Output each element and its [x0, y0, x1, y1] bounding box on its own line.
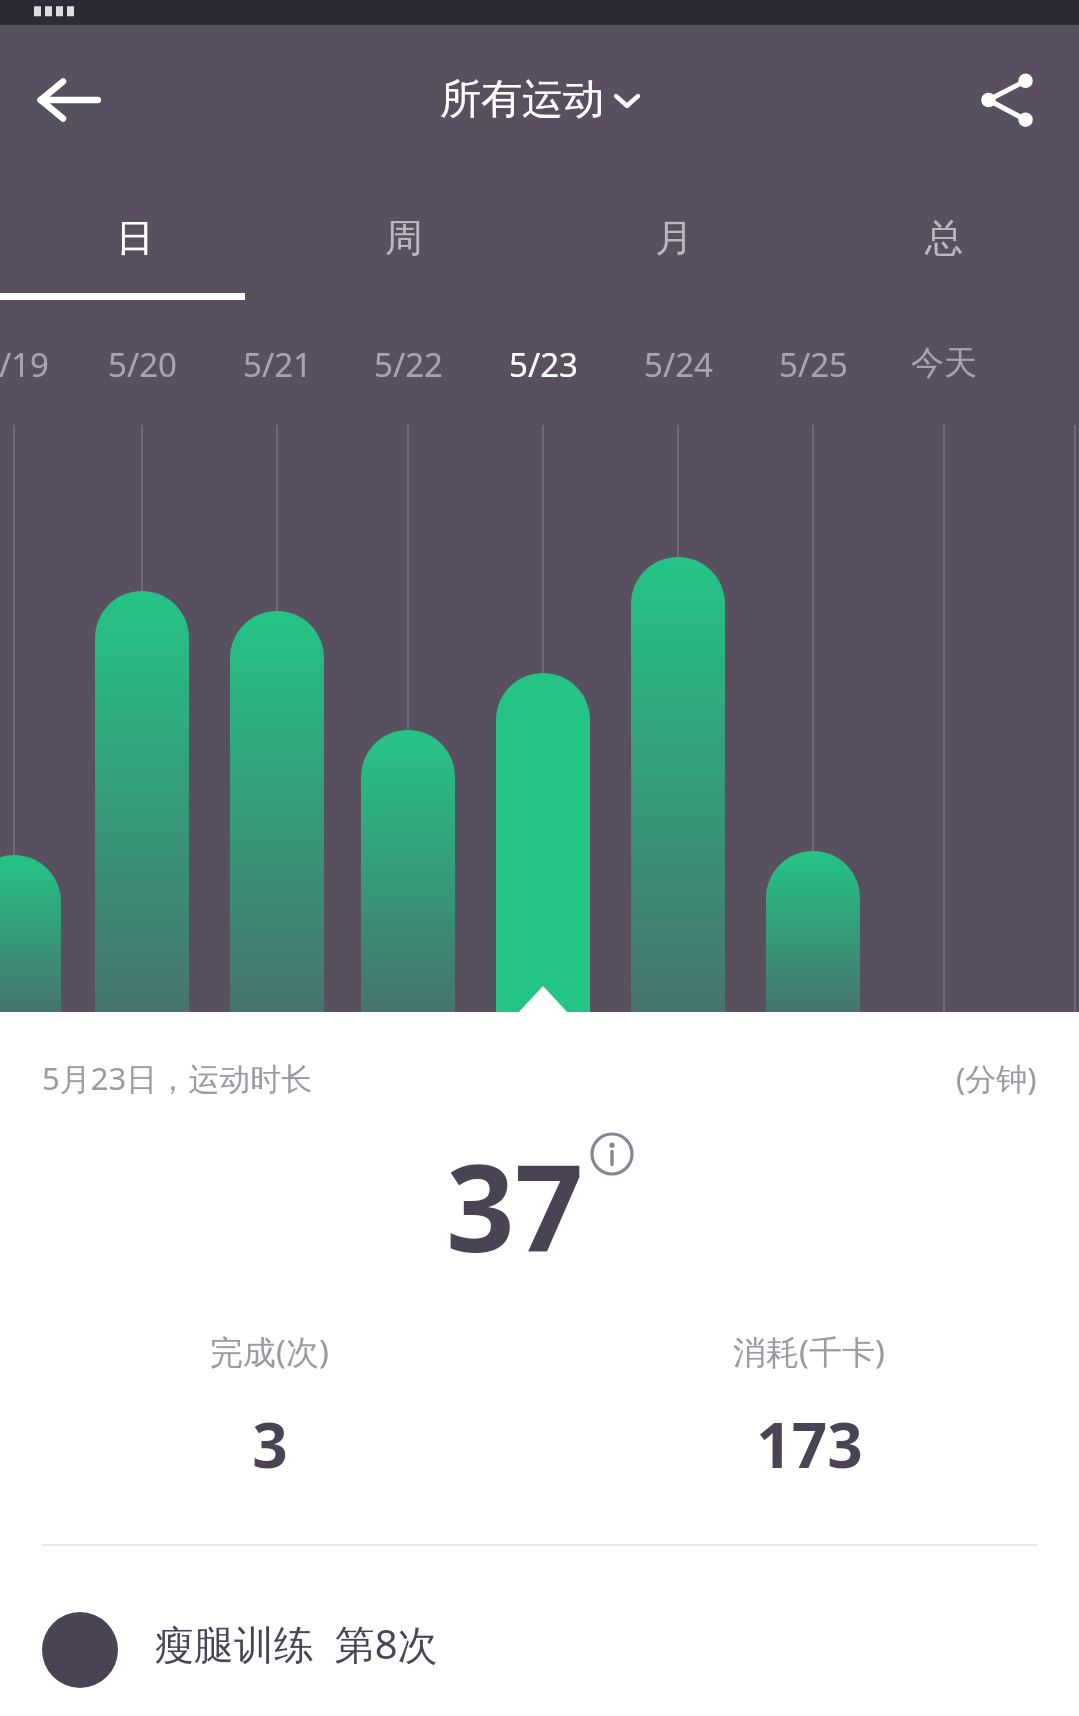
button[interactable]: 5/23 [477, 342, 609, 387]
button[interactable]: 完成(次) [0, 1329, 539, 1486]
staticText: 173 [756, 1402, 863, 1486]
button[interactable]: 总 [809, 175, 1079, 300]
staticText: 日 [116, 214, 154, 262]
button[interactable]: 5/21 [211, 342, 343, 387]
staticText: 5/19 [0, 342, 49, 387]
button[interactable]: 今天 [878, 342, 1010, 384]
staticText: 3 [252, 1402, 288, 1486]
button[interactable]: 所有运动 [440, 74, 640, 126]
button[interactable]: 瘦腿训练 第8次 [0, 1594, 1079, 1716]
button[interactable]: 月 [539, 175, 809, 300]
staticText: 总 [925, 214, 963, 262]
button[interactable]: 周 [269, 175, 539, 300]
staticText: 5月23日，运动时长 [42, 1057, 313, 1099]
button[interactable]: 5/24 [612, 342, 744, 387]
staticText: 月 [655, 214, 693, 262]
staticText: 今天 [911, 342, 977, 384]
staticText: 瘦腿训练 第8次 [154, 1616, 438, 1671]
staticText: 5/23 [509, 342, 578, 387]
button[interactable]: Info [590, 1132, 634, 1176]
staticText: 完成(次) [210, 1329, 329, 1374]
button[interactable]: Back [20, 52, 116, 148]
button[interactable]: 日 [0, 175, 269, 300]
staticText: 5/21 [243, 342, 312, 387]
staticText: 消耗(千卡) [733, 1329, 885, 1374]
button[interactable]: 5/22 [342, 342, 474, 387]
staticText: 37 [446, 1124, 584, 1287]
staticText: 5/25 [779, 342, 848, 387]
staticText: 5/22 [374, 342, 443, 387]
staticText: 5/20 [108, 342, 177, 387]
button[interactable]: 5/25 [747, 342, 879, 387]
button[interactable]: 消耗(千卡) [539, 1329, 1079, 1486]
button[interactable]: 5/19 [0, 342, 80, 387]
staticText: 所有运动 [440, 74, 604, 126]
button[interactable]: 5/20 [76, 342, 208, 387]
button[interactable]: Share [959, 52, 1055, 148]
staticText: 5/24 [644, 342, 713, 387]
staticText: 周 [385, 214, 423, 262]
staticText: (分钟) [956, 1057, 1037, 1099]
